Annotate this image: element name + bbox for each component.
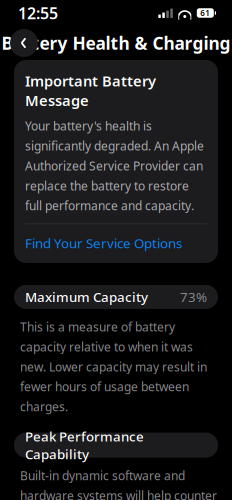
button[interactable]: Back [10,29,38,57]
staticText: Important Battery Message [25,71,156,110]
button[interactable]: Maximum Capacity [14,285,218,309]
staticText: Find Your Service Options [25,234,182,252]
staticText: 73% [180,288,207,306]
staticText: Your battery's health is significantly d… [25,118,204,214]
staticText: Maximum Capacity [25,288,148,306]
button[interactable]: Find Your Service Options [25,234,207,252]
staticText: This is a measure of battery capacity re… [20,319,207,415]
button[interactable]: Peak Performance Capability [14,433,218,458]
staticText: Peak Performance Capability [25,427,144,463]
staticText: Built-in dynamic software and hardware s… [20,468,217,500]
staticText: 12:55 [18,2,58,24]
staticText: Battery Health & Charging [1,31,230,54]
staticText: 61 [200,8,210,18]
